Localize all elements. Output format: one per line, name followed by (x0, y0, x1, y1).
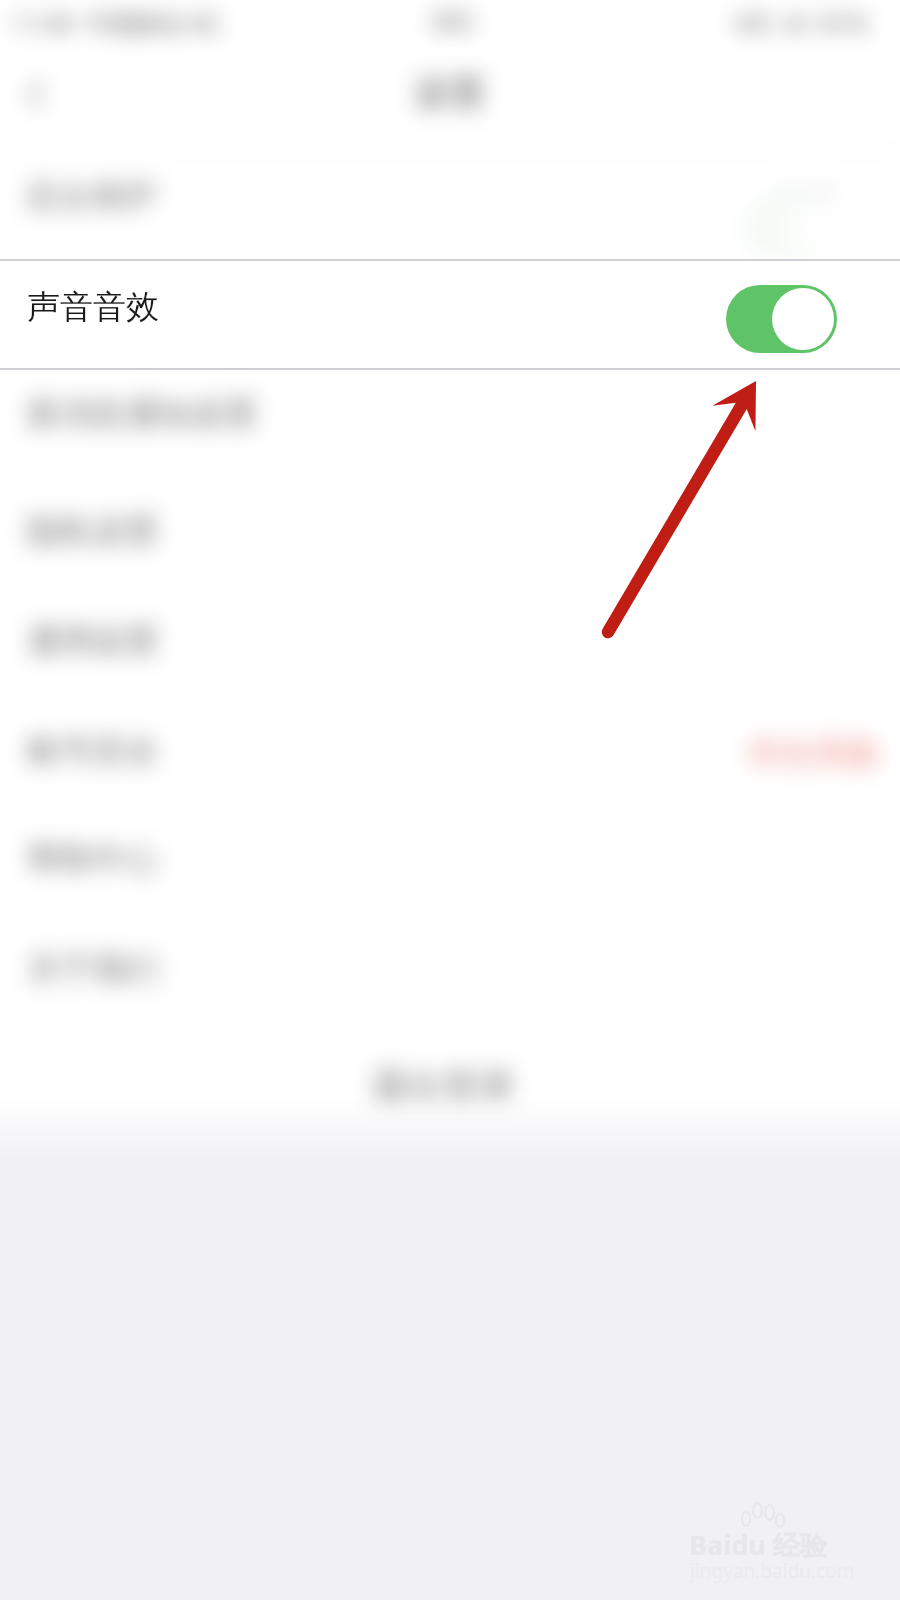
button[interactable]: 通用设置 (0, 589, 900, 699)
button[interactable]: 后台保护 (0, 150, 900, 259)
staticText: 退出登录 (371, 1063, 515, 1108)
staticText: 帮助中心 (27, 838, 159, 880)
staticText: 存在风险 (748, 732, 880, 774)
staticText: 后台保护 (25, 175, 157, 217)
staticText: HD ılıl 81% (735, 6, 868, 39)
staticText: 关于我们 (27, 948, 159, 990)
staticText: 11:40 中国移动 4G (12, 6, 220, 39)
button[interactable]: 声音音效 (0, 259, 900, 370)
button[interactable]: 新消息通知设置 (0, 362, 900, 472)
staticText: 隐私设置 (27, 510, 159, 552)
button[interactable]: 账号安全 (0, 699, 900, 809)
button[interactable]: Background protection off (742, 193, 853, 261)
button[interactable]: 退出登录 (0, 1027, 900, 1132)
button[interactable]: 关于我们 (0, 917, 900, 1027)
other: Annotation arrow pointing at the switch (0, 0, 900, 1600)
staticText: 账号安全 (27, 730, 159, 772)
button[interactable]: Sound effects on (726, 285, 837, 353)
staticText: 声音音效 (27, 286, 159, 328)
staticText: 相机 (431, 8, 475, 36)
staticText: Baidu 经验 (689, 1526, 827, 1563)
staticText: 通用设置 (27, 620, 159, 662)
button[interactable]: Back (6, 64, 66, 124)
button[interactable]: 帮助中心 (0, 807, 900, 917)
staticText: 新消息通知设置 (27, 393, 258, 435)
staticText: 设置 (414, 70, 486, 115)
button[interactable]: 隐私设置 (0, 479, 900, 589)
